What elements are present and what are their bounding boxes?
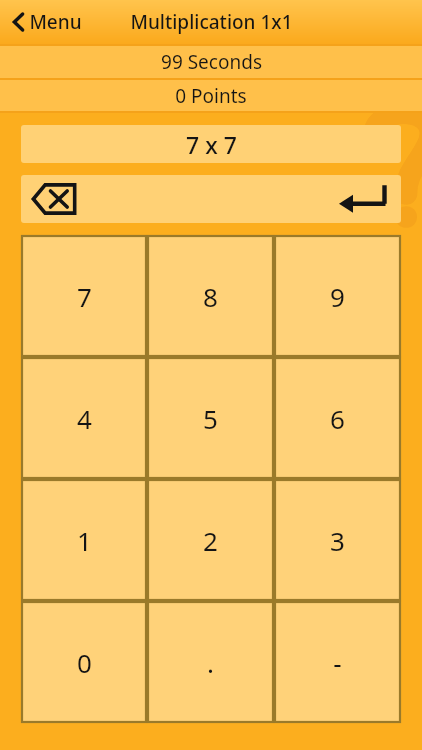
staticText: 4 [77,401,92,436]
staticText: 7 x 7 [186,129,237,160]
button[interactable]: Backspace [27,179,81,219]
button[interactable]: 1 [22,480,146,600]
staticText: . [207,645,214,680]
button[interactable]: 3 [275,480,400,600]
button[interactable]: 8 [148,236,273,356]
button[interactable]: 5 [148,358,273,478]
staticText: 1 [77,523,92,558]
staticText: 3 [330,523,345,558]
button[interactable]: Menu [8,5,86,39]
staticText: Multiplication 1x1 [130,9,293,35]
staticText: 6 [330,401,345,436]
staticText: 99 Seconds [161,49,262,75]
button[interactable]: 7 x 7 [21,125,401,163]
staticText: 9 [330,279,345,314]
staticText: 8 [203,279,218,314]
button[interactable]: . [148,602,273,722]
button[interactable]: 0 [22,602,146,722]
button[interactable]: 4 [22,358,146,478]
staticText: - [333,645,342,680]
staticText: 7 [77,279,92,314]
staticText: 0 Points [175,83,247,109]
button[interactable]: - [275,602,400,722]
staticText: 5 [203,401,218,436]
button[interactable]: Enter [333,178,393,220]
button[interactable]: 6 [275,358,400,478]
button[interactable]: 2 [148,480,273,600]
staticText: 0 [77,645,92,680]
staticText: Menu [29,9,82,35]
button[interactable]: 7 [22,236,146,356]
staticText: 2 [203,523,218,558]
button[interactable]: 9 [275,236,400,356]
